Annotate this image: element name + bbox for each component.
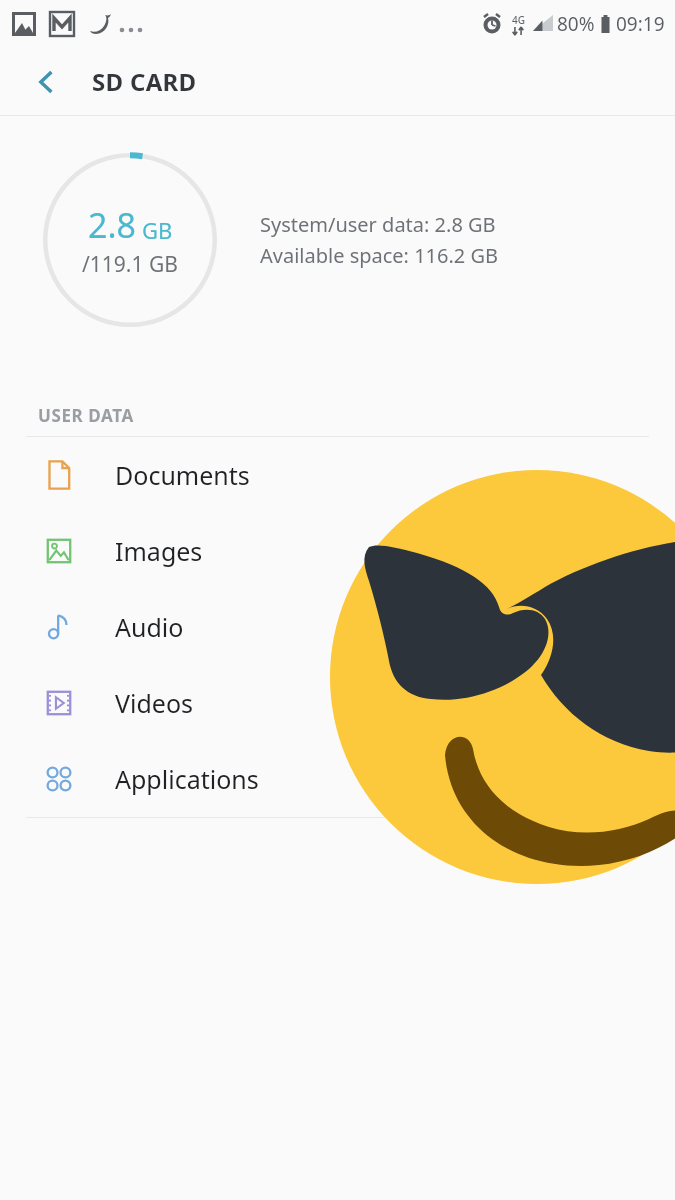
- button[interactable]: Images: [0, 513, 675, 589]
- staticText: 2.8: [88, 202, 137, 248]
- button[interactable]: Audio: [0, 589, 675, 665]
- staticText: Applications: [115, 762, 259, 796]
- staticText: System/user data: 2.8 GB: [260, 211, 496, 238]
- button[interactable]: Videos: [0, 665, 675, 741]
- staticText: SD CARD: [92, 65, 197, 98]
- staticText: GB: [142, 215, 173, 245]
- staticText: 09:19: [616, 11, 665, 37]
- staticText: 4G: [512, 13, 525, 27]
- staticText: Documents: [115, 458, 250, 492]
- button[interactable]: Documents: [0, 437, 675, 513]
- staticText: Images: [115, 534, 203, 568]
- staticText: Available space: 116.2 GB: [260, 242, 499, 269]
- staticText: USER DATA: [38, 404, 134, 427]
- button[interactable]: Back: [22, 58, 70, 106]
- staticText: /119.1 GB: [82, 250, 178, 279]
- staticText: Videos: [115, 686, 194, 720]
- button[interactable]: Applications: [0, 741, 675, 817]
- staticText: 80%: [557, 11, 595, 37]
- staticText: Audio: [115, 610, 184, 644]
